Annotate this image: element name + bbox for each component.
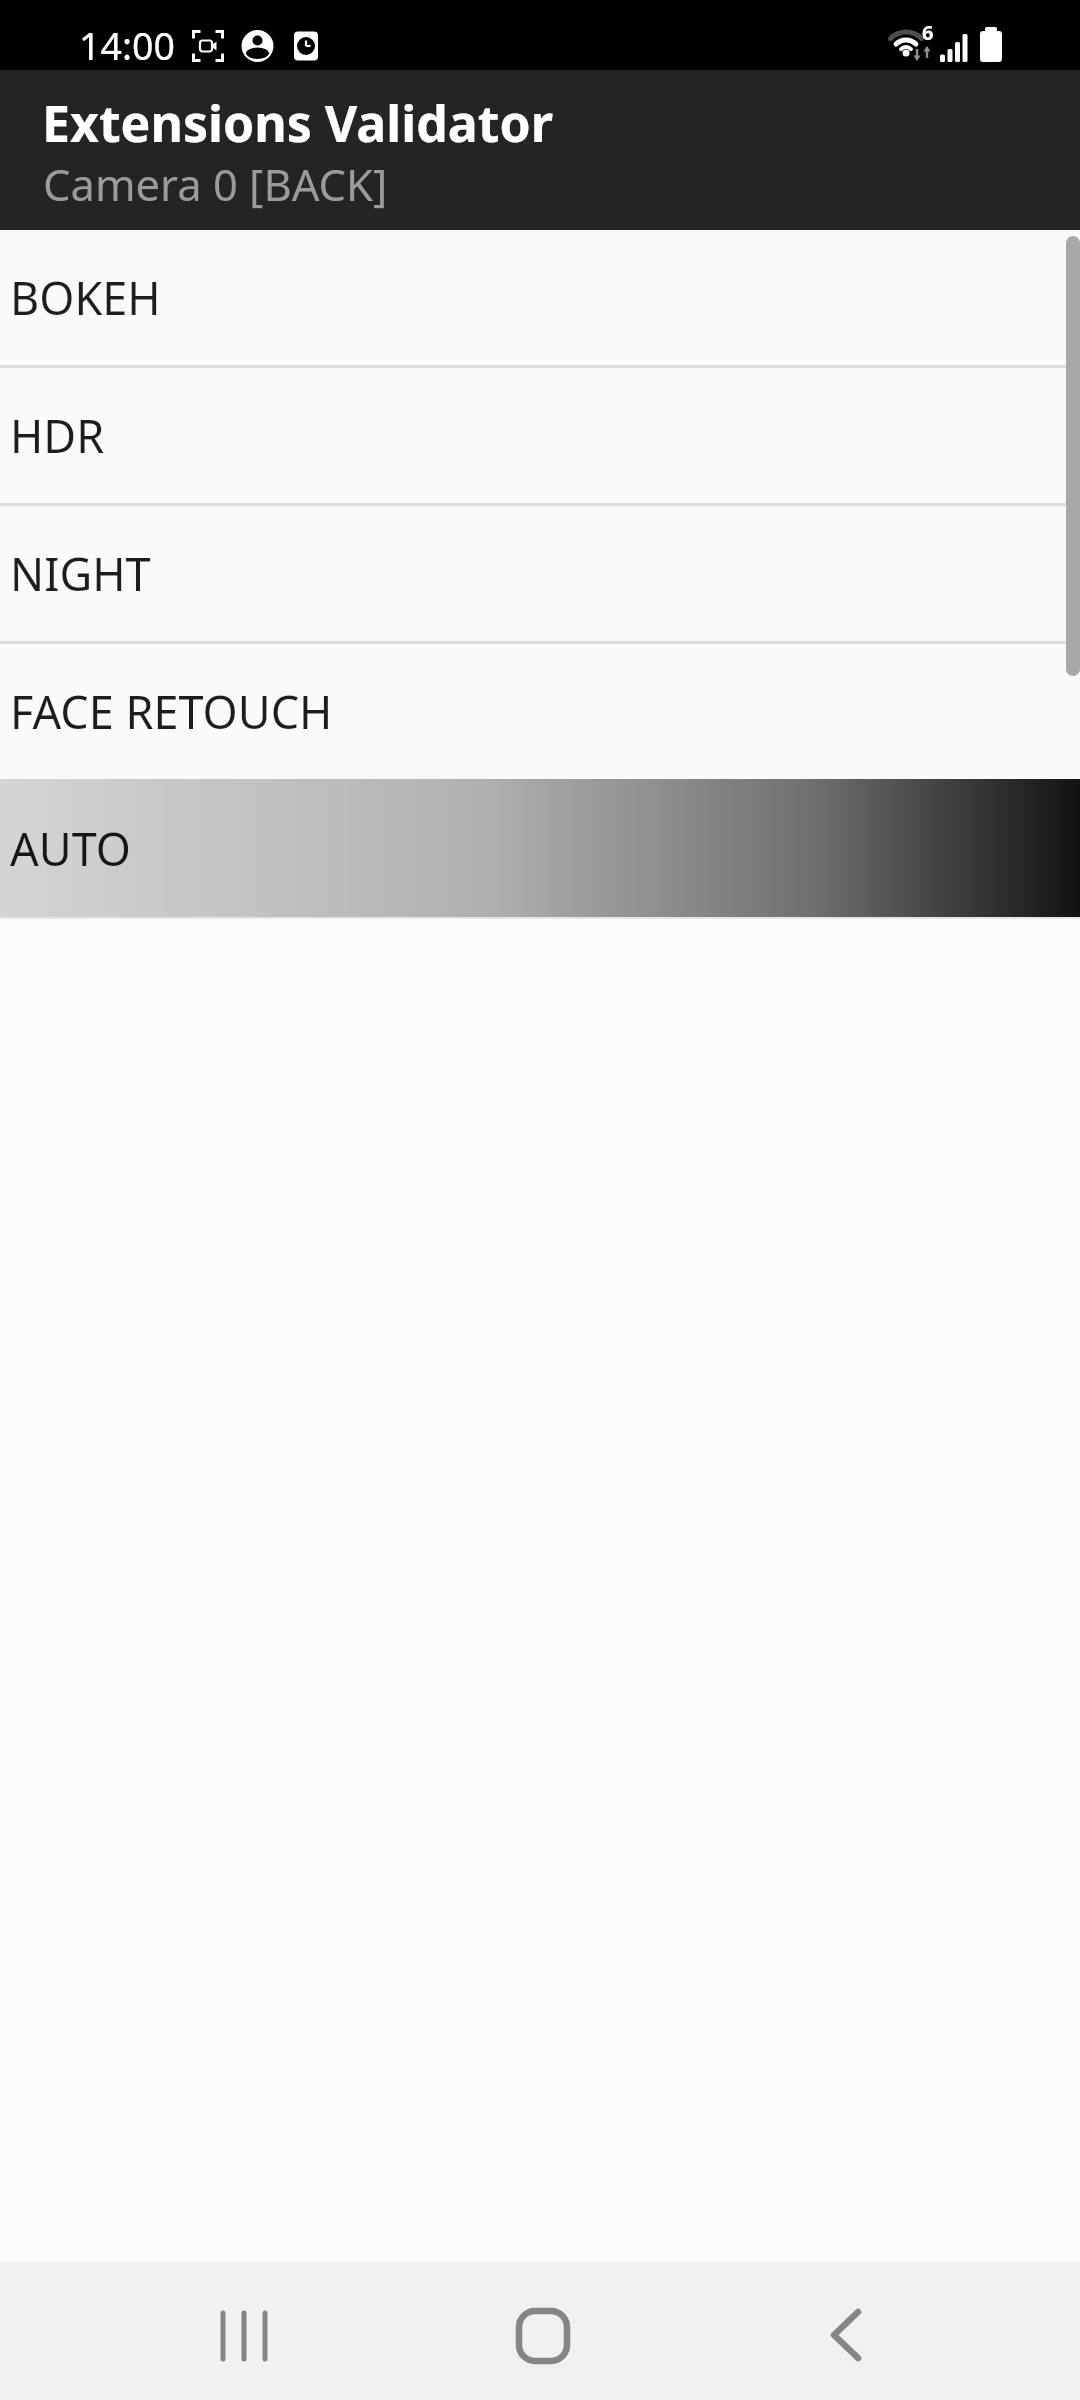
button[interactable]: AUTO: [0, 779, 1080, 917]
staticText: 6: [922, 19, 934, 46]
button[interactable]: NIGHT: [0, 506, 1080, 641]
staticText: BOKEH: [10, 267, 161, 328]
button[interactable]: [360, 2262, 720, 2400]
button[interactable]: [720, 2262, 1080, 2400]
button[interactable]: BOKEH: [0, 230, 1080, 365]
staticText: Camera 0 [BACK]: [43, 154, 388, 213]
button[interactable]: HDR: [0, 368, 1080, 503]
staticText: Extensions Validator: [42, 89, 553, 157]
staticText: NIGHT: [10, 543, 151, 604]
staticText: AUTO: [10, 818, 131, 879]
staticText: FACE RETOUCH: [10, 681, 333, 742]
button[interactable]: FACE RETOUCH: [0, 644, 1080, 779]
staticText: 14:00: [79, 20, 175, 71]
staticText: HDR: [10, 405, 105, 466]
button[interactable]: [0, 2262, 360, 2400]
